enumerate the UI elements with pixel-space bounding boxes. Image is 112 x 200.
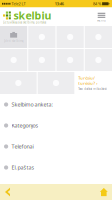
button[interactable]: Mano xyxy=(56,26,84,48)
button[interactable]: Meniu xyxy=(95,9,108,22)
staticText: 84 % xyxy=(93,1,102,6)
button[interactable]: Kategorijos xyxy=(0,115,112,136)
button[interactable]: Skelbimo anketa: xyxy=(0,94,112,115)
button[interactable]: Pradžia xyxy=(97,185,111,199)
staticText: Kategorijos xyxy=(12,122,39,129)
staticText: Tele2 LT xyxy=(11,1,26,6)
button[interactable]: Žinutės xyxy=(85,26,112,48)
button[interactable]: El. paštas xyxy=(0,157,112,178)
button[interactable]: Paslaugos xyxy=(85,49,112,71)
button[interactable]: Atgal xyxy=(1,185,14,199)
button[interactable]: Darbas xyxy=(56,49,84,71)
staticText: Lietuviškiausias skelbimų portalas xyxy=(3,21,46,24)
staticText: Tavo daiktai reikia žaisti xyxy=(78,87,107,91)
staticText: Turėsiu/turėsiu? › xyxy=(78,75,97,86)
staticText: Skelbimo anketa: xyxy=(12,101,53,108)
staticText: El. paštas xyxy=(12,164,35,171)
staticText: skelbiu xyxy=(13,8,51,23)
button[interactable]: Automobiliai xyxy=(0,49,27,71)
button[interactable]: Telefonai xyxy=(0,136,112,157)
staticText: Įdėti skelbimą xyxy=(4,39,23,43)
staticText: 13:46 xyxy=(55,1,64,6)
staticText: Meniu xyxy=(97,19,106,22)
button[interactable]: Nekilnojamas turtas xyxy=(28,49,55,71)
staticText: Telefonai xyxy=(12,143,34,150)
button[interactable]: Įdėti skelbimą xyxy=(0,26,27,48)
button[interactable]: Paieška xyxy=(28,26,55,48)
